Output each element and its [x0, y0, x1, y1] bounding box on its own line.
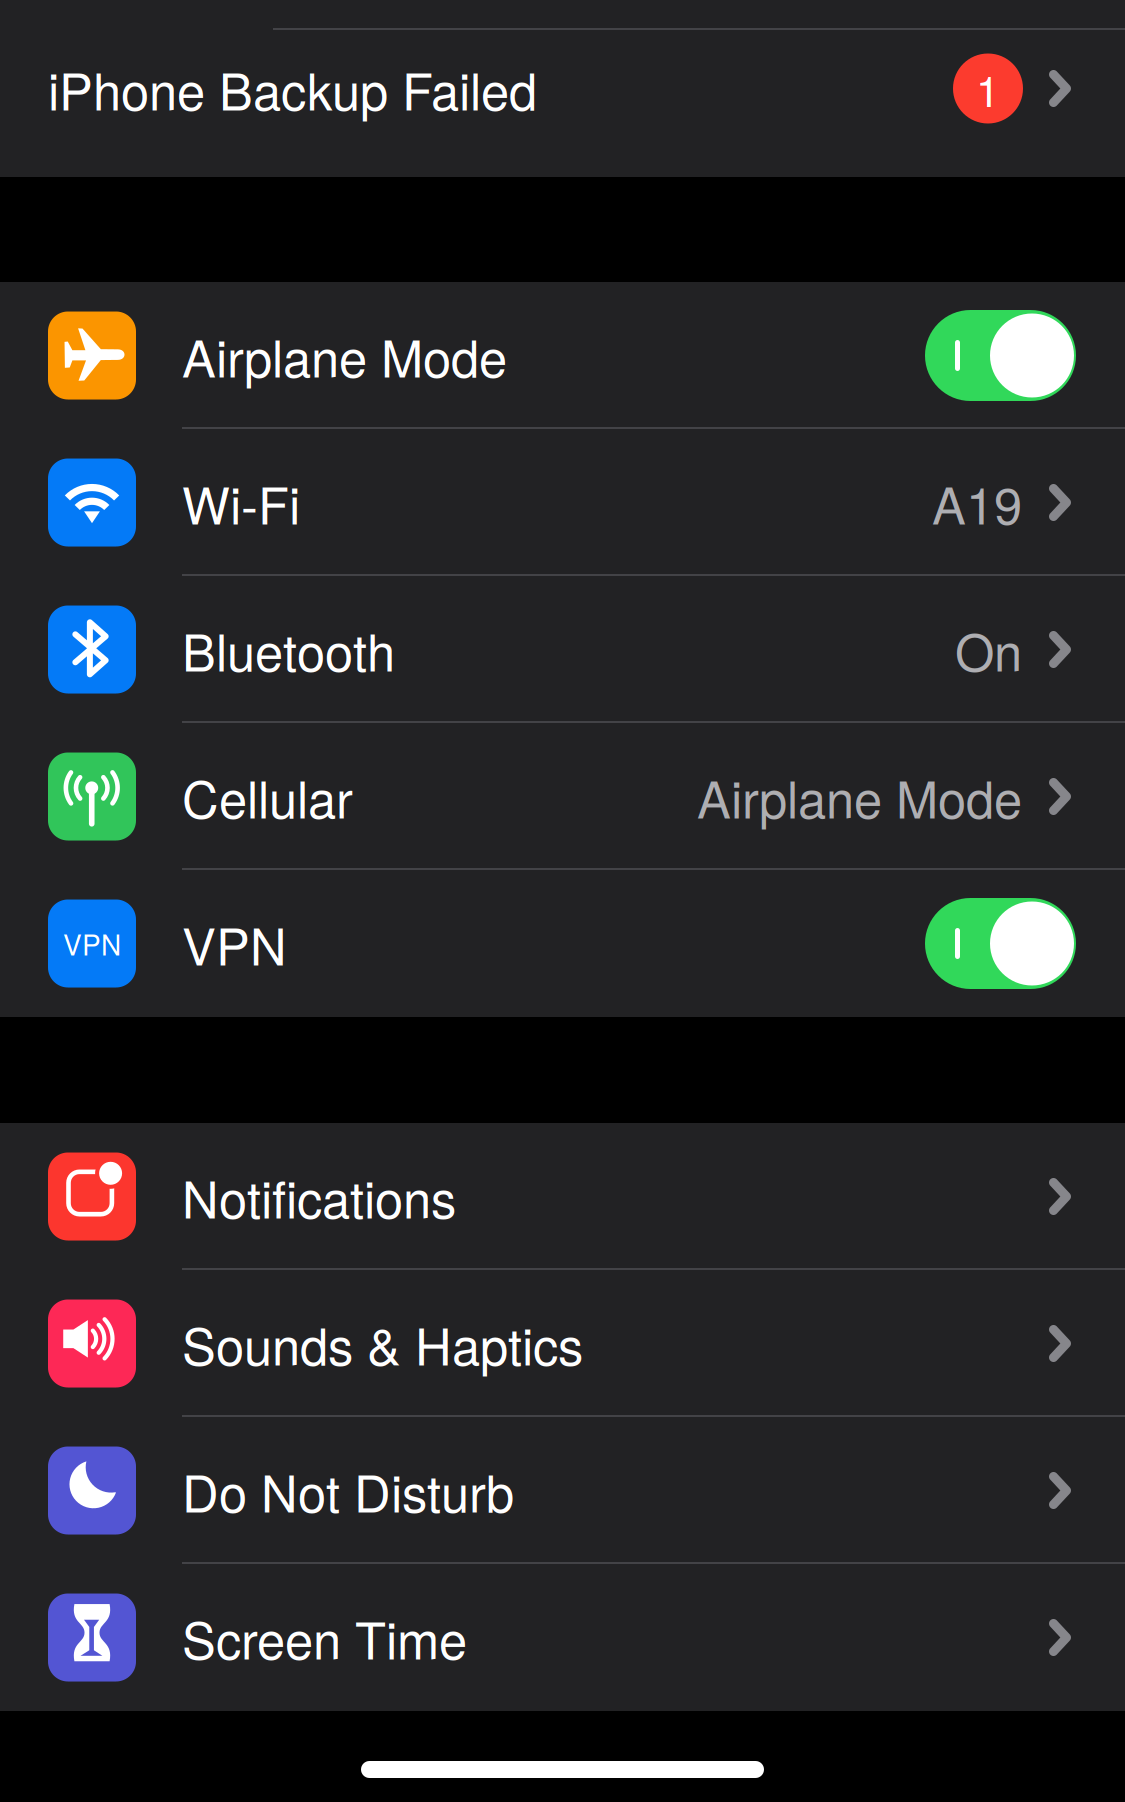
staticText: Airplane Mode [697, 760, 1022, 833]
staticText: Airplane Mode [182, 319, 507, 392]
staticText: VPN [182, 907, 287, 980]
staticText: Cellular [182, 760, 353, 833]
staticText: Bluetooth [182, 613, 395, 686]
button[interactable]: Do Not Disturb [0, 1417, 1125, 1564]
button[interactable]: Bluetooth [0, 576, 1125, 723]
staticText: VPN [63, 923, 121, 964]
staticText: A19 [932, 466, 1022, 539]
staticText: 1 [976, 58, 1000, 119]
staticText: Do Not Disturb [182, 1454, 514, 1527]
button[interactable]: VPN [0, 870, 1125, 1017]
button[interactable]: Airplane Mode [0, 282, 1125, 429]
staticText: Notifications [182, 1160, 456, 1233]
staticText: Wi-Fi [182, 466, 300, 539]
staticText: Sounds & Haptics [182, 1307, 583, 1380]
staticText: Screen Time [182, 1601, 467, 1674]
staticText: On [955, 613, 1022, 686]
button[interactable]: Cellular [0, 723, 1125, 870]
button[interactable]: Sounds & Haptics [0, 1270, 1125, 1417]
button[interactable]: Screen Time [0, 1564, 1125, 1711]
staticText: iPhone Backup Failed [48, 52, 537, 125]
button[interactable]: Notifications [0, 1123, 1125, 1270]
button[interactable]: iPhone Backup Failed [0, 0, 1125, 177]
button[interactable]: Wi-Fi [0, 429, 1125, 576]
